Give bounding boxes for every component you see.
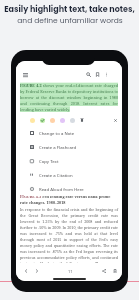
button[interactable]: Delete highlight: [77, 115, 87, 125]
button[interactable]: Create a Citation: [24, 168, 122, 182]
button[interactable]: 11: [62, 267, 78, 276]
staticText: Easily highlight text, take notes,: [4, 4, 135, 15]
button[interactable]: Search: [83, 69, 94, 80]
button[interactable]: Copy Text: [24, 154, 122, 168]
staticText: Change to a Note: [39, 130, 75, 136]
button[interactable]: Highlight colour: [67, 115, 77, 125]
button[interactable]: Previous page: [21, 266, 31, 276]
staticText: FIGURE 4.3 Fed lending rate versus bank …: [20, 194, 118, 205]
staticText: Copy Text: [39, 158, 59, 164]
button[interactable]: Bookmark: [92, 69, 103, 80]
button[interactable]: Highlight colour: [37, 115, 47, 125]
staticText: Read Aloud from Here: [39, 186, 84, 192]
staticText: In response to the financial crisis and …: [20, 207, 118, 266]
button[interactable]: Highlight colour: [27, 115, 37, 125]
staticText: Create a Flashcard: [39, 144, 77, 150]
staticText: and define unfamiliar words: [17, 15, 123, 25]
button[interactable]: Menu: [20, 69, 31, 80]
staticText: 11: [68, 269, 73, 274]
button[interactable]: More options: [101, 69, 112, 80]
button[interactable]: Read Aloud from Here: [24, 182, 122, 196]
button[interactable]: Bookmark page: [110, 266, 120, 276]
button[interactable]: Highlight colour: [57, 115, 67, 125]
button[interactable]: Next page: [32, 266, 42, 276]
button[interactable]: Share: [99, 266, 109, 276]
button[interactable]: Close: [110, 115, 120, 125]
button[interactable]: Create a Flashcard: [24, 140, 122, 154]
button[interactable]: Change to a Note: [24, 126, 122, 140]
button[interactable]: Highlight colour: [47, 115, 57, 125]
staticText: FIGURE 4.2 shows your end-of-discount ra…: [20, 83, 118, 112]
staticText: Create a Citation: [39, 172, 73, 178]
